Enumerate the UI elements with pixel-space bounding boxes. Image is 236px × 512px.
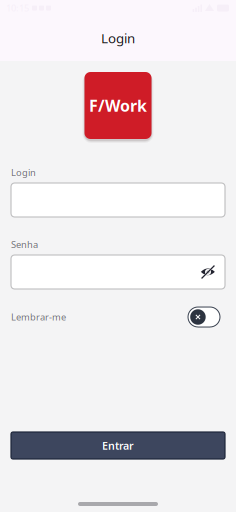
staticText: Lembrar-me bbox=[11, 311, 66, 323]
staticText: Login bbox=[101, 29, 135, 47]
staticText: Login bbox=[11, 166, 36, 179]
button[interactable]: Lembrar-me bbox=[0, 307, 236, 327]
staticText: Senha bbox=[11, 238, 38, 251]
button[interactable]: Mostrar senha bbox=[200, 264, 225, 280]
staticText: F/Work bbox=[89, 95, 147, 116]
button[interactable]: Entrar bbox=[0, 432, 236, 459]
staticText: Entrar bbox=[102, 438, 134, 453]
